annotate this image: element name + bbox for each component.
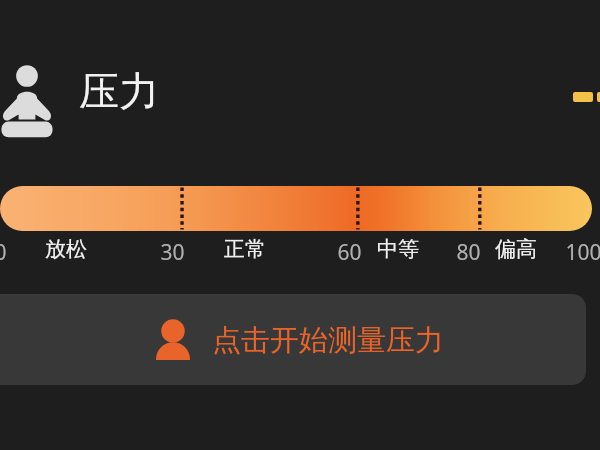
- staticText: 点击开始测量压力: [212, 322, 444, 359]
- staticText: 放松: [45, 236, 87, 262]
- button[interactable]: Start stress measurement: [0, 294, 586, 385]
- staticText: 60: [337, 238, 362, 267]
- staticText: 30: [160, 238, 185, 267]
- staticText: 偏高: [495, 236, 537, 262]
- staticText: 0: [0, 238, 7, 267]
- staticText: 中等: [377, 236, 419, 262]
- staticText: 100: [565, 238, 600, 267]
- staticText: 正常: [224, 236, 266, 262]
- staticText: 压力: [79, 66, 159, 116]
- other: Start stress measurement: [156, 320, 190, 360]
- staticText: 80: [456, 238, 481, 267]
